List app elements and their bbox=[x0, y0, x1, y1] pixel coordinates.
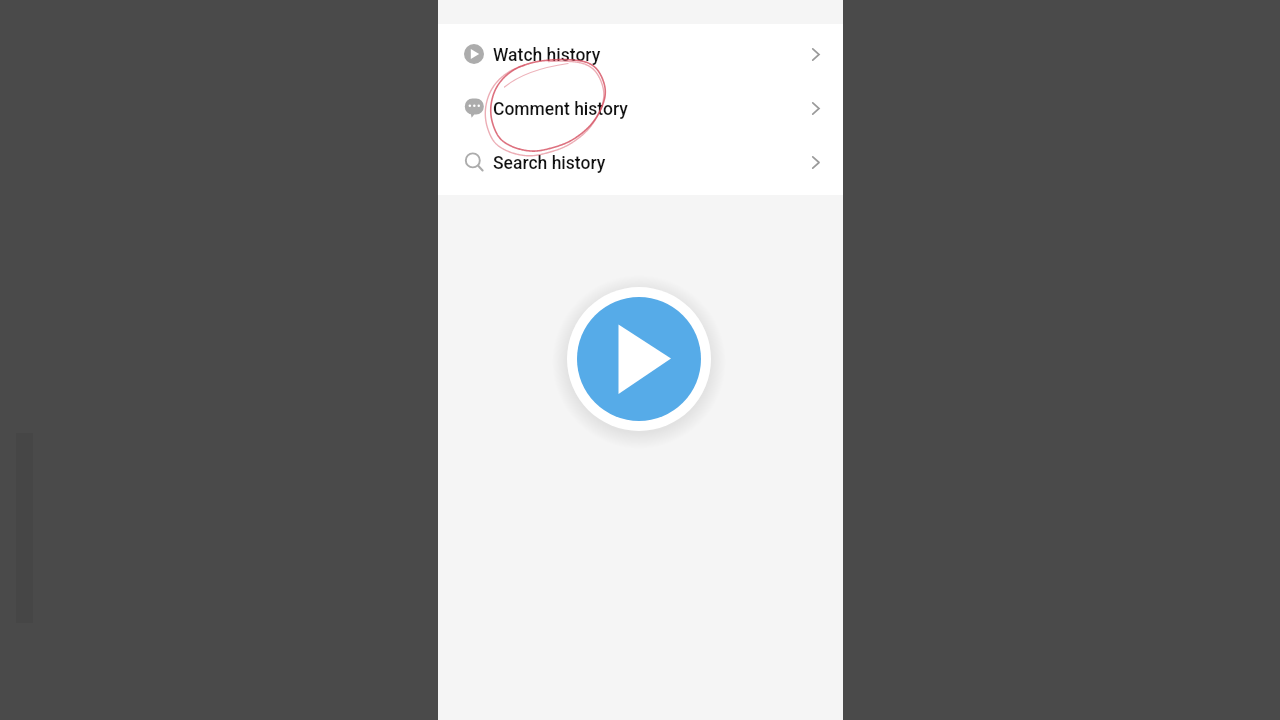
staticText: Search history bbox=[493, 153, 606, 174]
button[interactable]: Play bbox=[549, 269, 729, 449]
button[interactable]: Comment history bbox=[438, 81, 843, 135]
button[interactable]: Search history bbox=[438, 135, 843, 189]
button[interactable]: Watch history bbox=[438, 27, 843, 81]
staticText: Comment history bbox=[493, 99, 628, 120]
staticText: Watch history bbox=[493, 45, 601, 66]
